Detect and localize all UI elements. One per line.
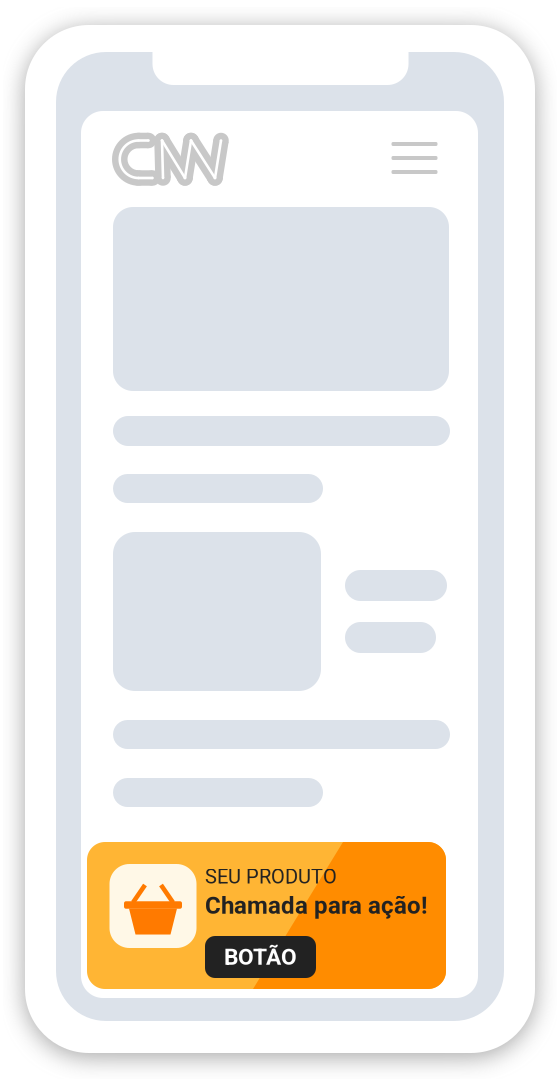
staticText: SEU PRODUTO: [205, 865, 337, 888]
button[interactable]: Menu: [381, 133, 447, 183]
staticText: BOTÃO: [224, 944, 297, 970]
staticText: Chamada para ação!: [205, 891, 427, 919]
button[interactable]: BOTÃO: [205, 936, 316, 978]
button[interactable]: CNN home: [108, 129, 232, 189]
